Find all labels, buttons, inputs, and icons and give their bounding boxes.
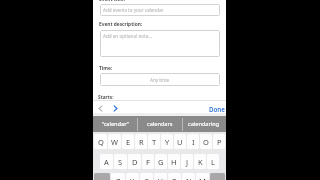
button[interactable]: G bbox=[155, 154, 167, 169]
button[interactable]: calendars bbox=[138, 116, 182, 132]
staticText: N bbox=[186, 176, 192, 180]
button[interactable]: calendaring bbox=[182, 116, 226, 132]
staticText: I bbox=[192, 137, 195, 147]
staticText: J bbox=[186, 157, 189, 167]
staticText: O bbox=[203, 137, 209, 147]
button[interactable]: W bbox=[108, 134, 121, 149]
staticText: Add events to your calendar bbox=[103, 7, 164, 13]
button[interactable]: Q bbox=[94, 134, 107, 149]
button[interactable]: H bbox=[168, 154, 180, 169]
staticText: G bbox=[158, 157, 164, 167]
staticText: B bbox=[172, 176, 177, 180]
staticText: A bbox=[104, 157, 109, 167]
button[interactable]: Shift bbox=[94, 173, 110, 180]
button[interactable]: Done bbox=[204, 101, 226, 116]
staticText: calendaring bbox=[188, 120, 220, 128]
button[interactable]: K bbox=[194, 154, 206, 169]
staticText: X bbox=[130, 176, 135, 180]
staticText: P bbox=[217, 137, 222, 147]
button[interactable]: Next field bbox=[108, 101, 123, 116]
button[interactable]: S bbox=[114, 154, 127, 169]
button[interactable]: I bbox=[187, 134, 199, 149]
staticText: Starts: bbox=[98, 94, 114, 101]
staticText: Time: bbox=[99, 65, 113, 72]
button[interactable]: X bbox=[126, 173, 139, 180]
button[interactable]: “calendar” bbox=[93, 116, 138, 132]
button[interactable]: L bbox=[207, 154, 219, 169]
button[interactable]: B bbox=[168, 173, 181, 180]
staticText: calendars bbox=[147, 120, 173, 128]
button[interactable]: Y bbox=[161, 134, 173, 149]
button[interactable]: C bbox=[140, 173, 153, 180]
button[interactable]: J bbox=[181, 154, 193, 169]
button[interactable]: Backspace bbox=[210, 173, 225, 180]
staticText: F bbox=[146, 157, 150, 167]
staticText: Any time bbox=[150, 77, 170, 83]
button[interactable]: Z bbox=[111, 173, 125, 180]
button[interactable]: V bbox=[154, 173, 167, 180]
button[interactable]: F bbox=[142, 154, 154, 169]
staticText: W bbox=[111, 137, 118, 147]
button[interactable]: R bbox=[135, 134, 147, 149]
staticText: Done bbox=[209, 105, 225, 113]
staticText: Add an optional note... bbox=[103, 33, 152, 39]
button[interactable]: D bbox=[128, 154, 141, 169]
staticText: E bbox=[126, 137, 131, 147]
staticText: Event description: bbox=[99, 21, 143, 28]
staticText: D bbox=[132, 157, 138, 167]
button[interactable]: U bbox=[174, 134, 186, 149]
staticText: Z bbox=[116, 176, 121, 180]
staticText: Y bbox=[165, 137, 170, 147]
button[interactable]: N bbox=[182, 173, 195, 180]
button[interactable]: Any time bbox=[100, 73, 220, 86]
staticText: C bbox=[144, 176, 149, 180]
staticText: M bbox=[199, 176, 206, 180]
staticText: Q bbox=[98, 137, 104, 147]
button[interactable]: Add events to your calendar bbox=[100, 4, 220, 16]
staticText: S bbox=[118, 157, 123, 167]
staticText: T bbox=[152, 137, 157, 147]
button[interactable]: Add an optional note... bbox=[100, 30, 220, 57]
staticText: H bbox=[171, 157, 177, 167]
staticText: K bbox=[198, 157, 203, 167]
button[interactable]: P bbox=[213, 134, 225, 149]
button[interactable]: O bbox=[200, 134, 212, 149]
button[interactable]: A bbox=[100, 154, 113, 169]
staticText: V bbox=[158, 176, 163, 180]
staticText: U bbox=[177, 137, 183, 147]
staticText: “calendar” bbox=[102, 120, 129, 128]
button[interactable]: Previous field bbox=[93, 101, 108, 116]
staticText: R bbox=[139, 137, 144, 147]
button[interactable]: T bbox=[148, 134, 160, 149]
button[interactable]: M bbox=[196, 173, 209, 180]
button[interactable]: E bbox=[122, 134, 134, 149]
staticText: Event title: bbox=[99, 0, 125, 3]
staticText: L bbox=[211, 157, 215, 167]
